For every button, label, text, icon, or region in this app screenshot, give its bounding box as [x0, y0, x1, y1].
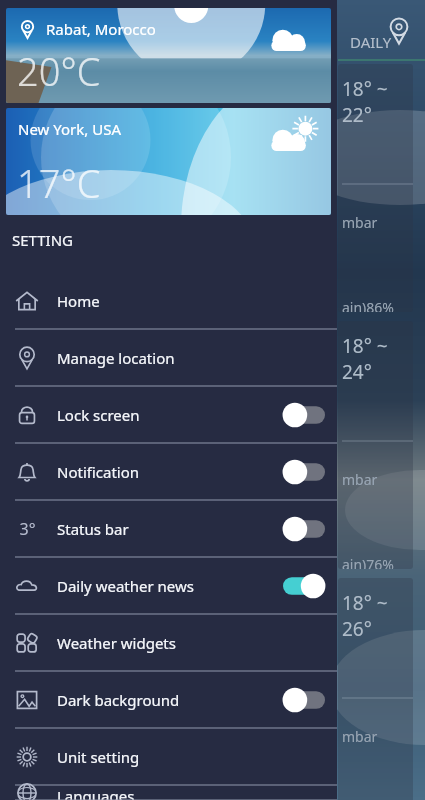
staticText: ain)76%	[342, 555, 394, 569]
staticText: Dark background	[57, 690, 180, 710]
staticText: New York, USA	[18, 119, 121, 139]
staticText: Notification	[57, 462, 140, 482]
button[interactable]: Unit setting	[0, 729, 337, 785]
button[interactable]: Daily weather news	[0, 558, 337, 614]
button[interactable]: Lock screen off	[283, 404, 325, 426]
staticText: Daily weather news	[57, 576, 194, 596]
button[interactable]: Notification	[0, 444, 337, 500]
button[interactable]: 3°	[0, 501, 337, 557]
button[interactable]: Dark background off	[283, 689, 325, 711]
button[interactable]: Status bar off	[283, 518, 325, 540]
staticText: 3°	[19, 518, 36, 540]
staticText: SETTING	[12, 230, 73, 250]
staticText: mbar	[342, 470, 378, 489]
button[interactable]: Lock screen	[0, 387, 337, 443]
staticText: Home	[57, 291, 100, 311]
staticText: Languages	[57, 786, 135, 800]
staticText: Rabat, Morocco	[46, 19, 156, 39]
staticText: 18° ~ 22°	[342, 76, 413, 128]
button[interactable]: Dark background	[0, 672, 337, 728]
staticText: mbar	[342, 727, 378, 746]
button[interactable]: Home	[0, 273, 337, 329]
staticText: DAILY	[350, 32, 392, 52]
staticText: Status bar	[57, 519, 129, 539]
button[interactable]: Notification off	[283, 461, 325, 483]
staticText: Weather widgets	[57, 633, 176, 653]
staticText: 20°C	[17, 45, 101, 97]
staticText: 18° ~ 26°	[342, 590, 413, 642]
button[interactable]: Languages	[0, 786, 337, 800]
button[interactable]: Manage location	[0, 330, 337, 386]
button[interactable]: New York, USA	[6, 108, 331, 215]
button[interactable]: Rabat, Morocco	[6, 8, 331, 103]
button[interactable]: Weather widgets	[0, 615, 337, 671]
staticText: ain)86%	[342, 298, 394, 312]
button[interactable]: 18° ~ 22°	[338, 64, 413, 312]
button[interactable]: Daily weather news on	[283, 575, 325, 597]
staticText: Manage location	[57, 348, 175, 368]
staticText: mbar	[342, 213, 378, 232]
staticText: Unit setting	[57, 747, 140, 767]
staticText: Lock screen	[57, 405, 140, 425]
button[interactable]: 18° ~ 26°	[338, 578, 413, 800]
button[interactable]: 18° ~ 24°	[338, 321, 413, 569]
button[interactable]: Location	[385, 17, 413, 45]
staticText: 17°C	[17, 157, 101, 209]
staticText: 18° ~ 24°	[342, 333, 413, 385]
